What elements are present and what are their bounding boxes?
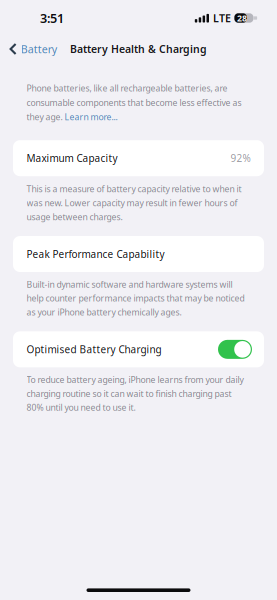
staticText: Learn more...	[64, 111, 117, 123]
staticText: 28	[237, 12, 247, 24]
button[interactable]: Optimised Battery Charging	[0, 331, 264, 367]
staticText: Battery	[21, 42, 57, 56]
staticText: LTE	[213, 11, 231, 25]
staticText: Phone batteries, like all rechargeable b…	[26, 82, 227, 94]
staticText: 92%	[230, 152, 250, 165]
staticText: 3:51	[40, 10, 64, 26]
staticText: Peak Performance Capability	[26, 247, 164, 261]
staticText: To reduce battery ageing, iPhone learns …	[26, 374, 243, 413]
staticText: they age.	[26, 111, 64, 123]
staticText: Maximum Capacity	[26, 152, 117, 165]
button[interactable]: Learn more...	[64, 111, 117, 123]
staticText: consumable components that become less e…	[26, 97, 241, 108]
staticText: Optimised Battery Charging	[26, 343, 161, 356]
staticText: Built-in dynamic software and hardware s…	[26, 278, 244, 318]
staticText: This is a measure of battery capacity re…	[26, 183, 241, 222]
button[interactable]: Battery	[0, 38, 65, 60]
staticText: Battery Health & Charging	[70, 42, 207, 56]
